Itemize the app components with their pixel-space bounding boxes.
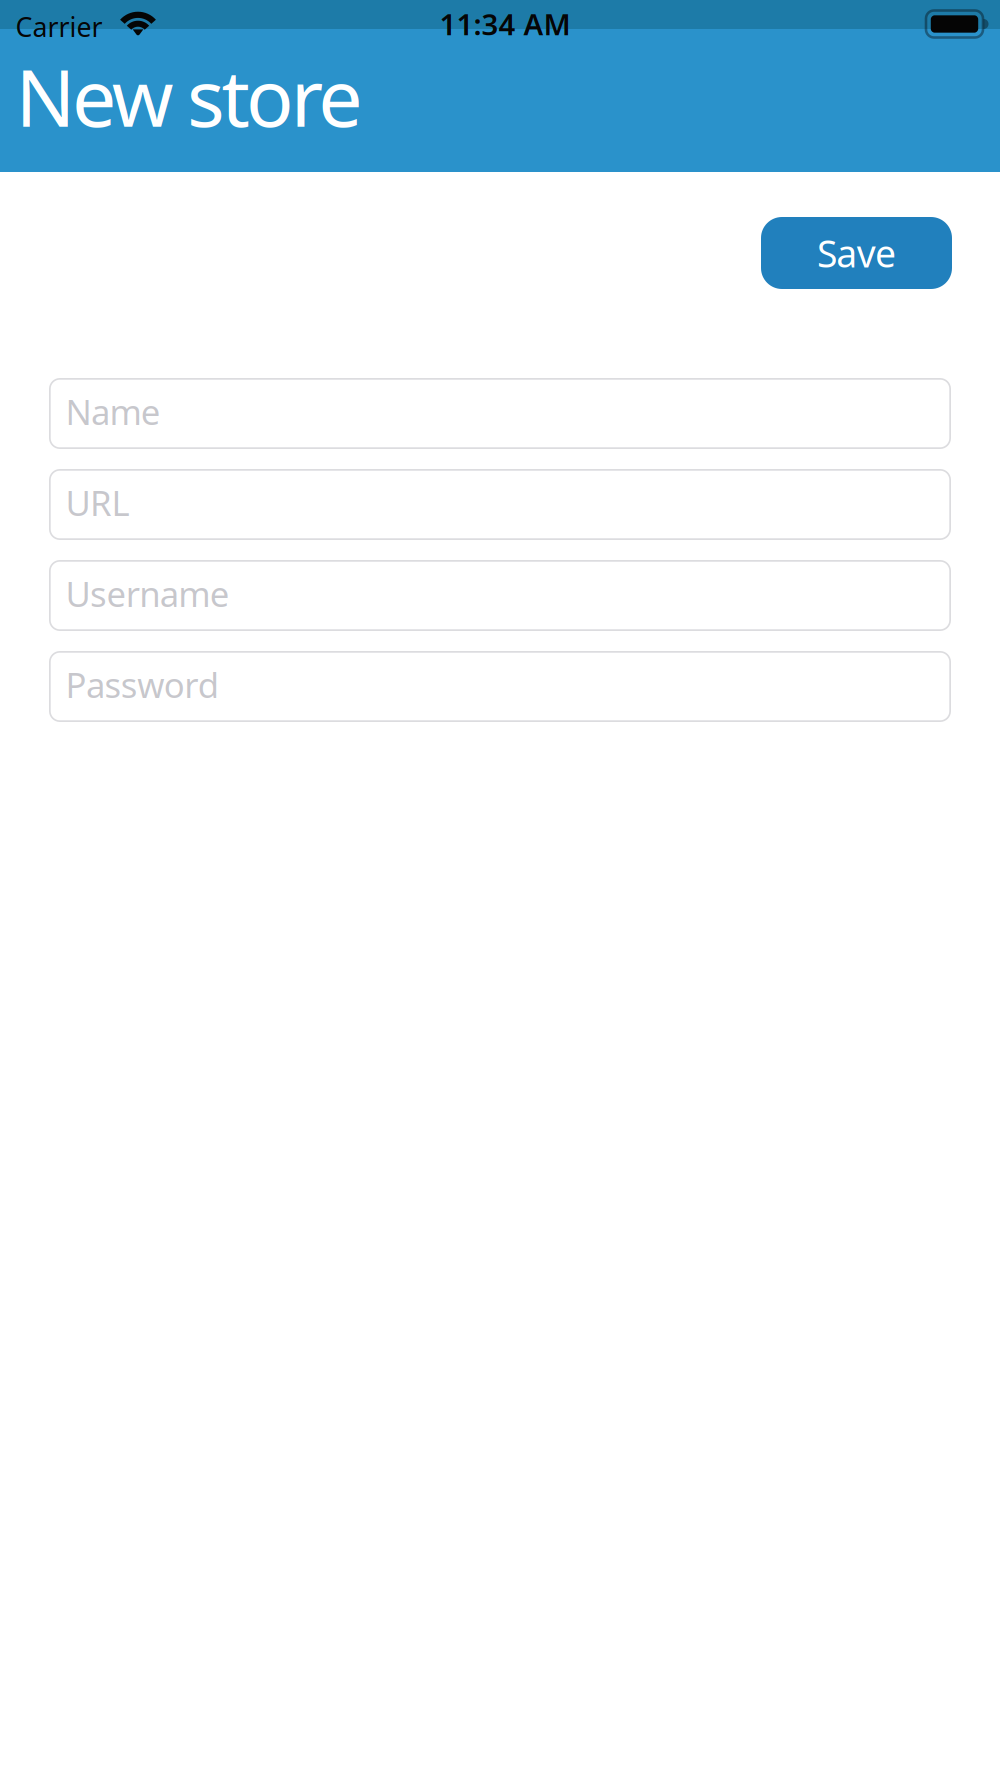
staticText: URL (65, 479, 129, 525)
button[interactable]: Password (49, 651, 951, 722)
staticText: Password (65, 661, 219, 707)
staticText: 11:34 AM (439, 4, 570, 43)
staticText: Username (65, 570, 230, 616)
staticText: Carrier (15, 9, 102, 44)
button[interactable]: Username (49, 560, 951, 631)
staticText: New store (15, 44, 362, 148)
button[interactable]: Save (761, 217, 952, 289)
button[interactable]: URL (49, 469, 951, 540)
staticText: Name (65, 388, 161, 434)
staticText: Save (817, 228, 896, 278)
button[interactable]: Name (49, 378, 951, 449)
